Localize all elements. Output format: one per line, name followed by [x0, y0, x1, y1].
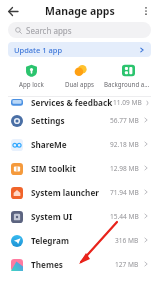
- staticText: 316 MB: [115, 236, 139, 245]
- staticText: 56.77 MB: [110, 116, 139, 125]
- button[interactable]: System launcher: [0, 180, 159, 204]
- staticText: Update 1 app: [14, 45, 63, 55]
- button[interactable]: Settings: [0, 108, 159, 132]
- staticText: SIM toolkit: [31, 163, 76, 174]
- staticText: Search apps: [26, 25, 72, 36]
- button[interactable]: Telegram: [0, 228, 159, 252]
- staticText: Telegram: [31, 235, 69, 246]
- staticText: 127 MB: [115, 260, 139, 269]
- staticText: 11.09 MB: [113, 98, 142, 107]
- staticText: System launcher: [31, 187, 99, 198]
- staticText: Settings: [31, 115, 65, 126]
- button[interactable]: System UI: [0, 204, 159, 228]
- button[interactable]: Services & feedback: [0, 97, 159, 108]
- staticText: Background aut…: [104, 80, 152, 88]
- staticText: 92.18 MB: [110, 140, 139, 149]
- button[interactable]: Back: [0, 0, 26, 22]
- staticText: 71.94 MB: [110, 188, 139, 197]
- button[interactable]: Dual apps: [56, 62, 104, 90]
- staticText: Dual apps: [65, 80, 95, 88]
- button[interactable]: App lock: [7, 62, 55, 90]
- staticText: Themes: [31, 259, 63, 270]
- staticText: ShareMe: [31, 139, 67, 150]
- button[interactable]: Themes: [0, 252, 159, 276]
- staticText: App lock: [19, 80, 44, 88]
- button[interactable]: Search apps: [8, 22, 151, 38]
- button[interactable]: Background aut…: [104, 62, 152, 90]
- staticText: Manage apps: [45, 4, 115, 18]
- button[interactable]: SIM toolkit: [0, 156, 159, 180]
- button[interactable]: ShareMe: [0, 132, 159, 156]
- button[interactable]: More options: [133, 0, 159, 22]
- staticText: 15.44 MB: [110, 212, 139, 221]
- staticText: 12.98 MB: [110, 164, 139, 173]
- button[interactable]: Update 1 app: [8, 42, 151, 57]
- staticText: System UI: [31, 211, 73, 222]
- staticText: Services & feedback: [31, 97, 113, 108]
